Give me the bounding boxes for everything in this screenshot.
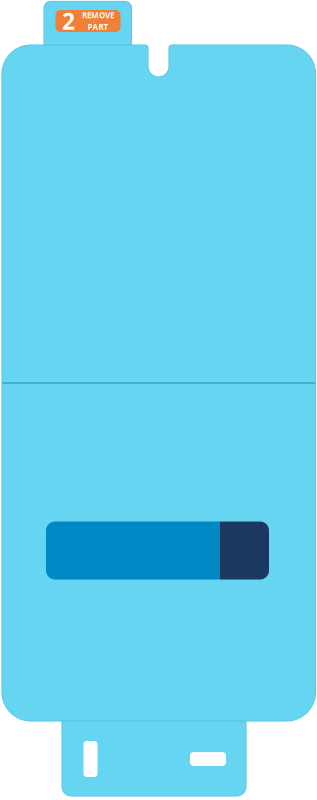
staticText: 2 (62, 6, 75, 36)
staticText: PART (87, 21, 108, 32)
staticText: REMOVE (82, 10, 114, 20)
button[interactable]: Pull tab (46, 521, 269, 579)
button[interactable]: 2 (55, 10, 120, 32)
